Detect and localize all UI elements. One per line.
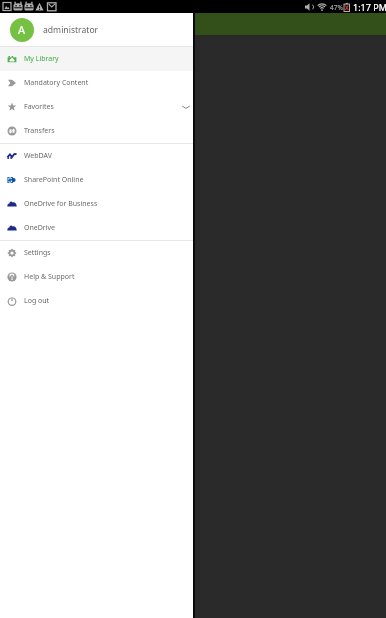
button[interactable]: Mandatory Content (0, 71, 193, 95)
staticText: A (18, 22, 26, 37)
staticText: administrator (43, 24, 99, 36)
button[interactable]: Settings (0, 241, 193, 265)
staticText: OneDrive for Business (24, 199, 98, 209)
button[interactable]: OneDrive (0, 216, 193, 240)
staticText: Help & Support (24, 272, 75, 282)
staticText: OneDrive (24, 223, 56, 233)
button[interactable]: My Library (0, 47, 193, 71)
staticText: Favorites (24, 102, 54, 112)
staticText: WebDAV (24, 151, 52, 161)
button[interactable]: Help & Support (0, 265, 193, 289)
button[interactable]: Transfers (0, 119, 193, 143)
staticText: My Library (24, 54, 59, 64)
staticText: SharePoint Online (24, 175, 84, 185)
staticText: 1:17 PM (353, 1, 386, 13)
button[interactable]: OneDrive for Business (0, 192, 193, 216)
staticText: Log out (24, 296, 50, 306)
staticText: 47% (330, 3, 343, 12)
staticText: Transfers (24, 126, 55, 136)
staticText: Mandatory Content (24, 78, 89, 88)
button[interactable]: Log out (0, 289, 193, 313)
button[interactable]: Favorites (0, 95, 193, 119)
staticText: Settings (24, 248, 51, 258)
button[interactable]: WebDAV (0, 144, 193, 168)
button[interactable]: A (0, 13, 193, 46)
button[interactable]: SharePoint Online (0, 168, 193, 192)
